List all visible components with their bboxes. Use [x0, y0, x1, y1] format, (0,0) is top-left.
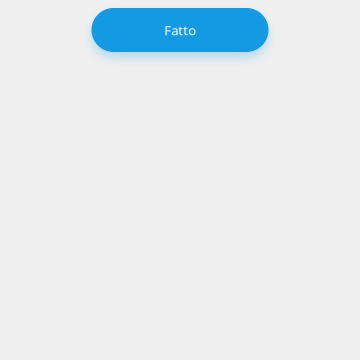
- button[interactable]: Fatto: [91, 8, 268, 52]
- staticText: Fatto: [164, 21, 196, 39]
